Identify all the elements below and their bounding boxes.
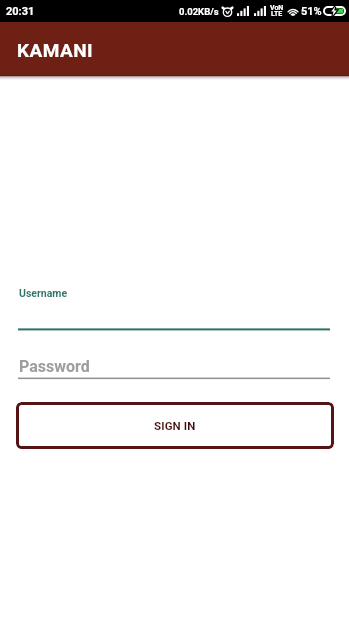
button[interactable]: Password input field (18, 352, 331, 380)
staticText: 0.02KB/s (179, 6, 219, 17)
staticText: 20:31 (6, 5, 35, 18)
staticText: Username (19, 287, 68, 299)
button[interactable]: SIGN IN (16, 402, 334, 449)
staticText: VoN (270, 4, 283, 12)
staticText: 51% (301, 5, 322, 18)
staticText: LTE (271, 10, 283, 18)
staticText: KAMANI (17, 39, 94, 61)
button[interactable]: Username input field (18, 283, 331, 331)
staticText: Password (19, 357, 90, 376)
staticText: SIGN IN (154, 419, 196, 432)
